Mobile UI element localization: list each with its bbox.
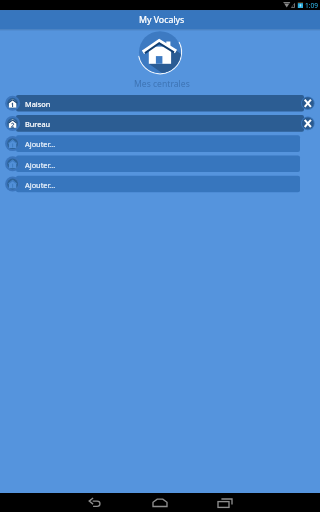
button[interactable]: Maison	[4, 95, 304, 112]
staticText: My Vocalys	[139, 14, 185, 26]
staticText: Ajouter...	[25, 180, 56, 190]
staticText: Ajouter...	[25, 160, 56, 170]
staticText: 1:09	[305, 1, 319, 10]
button[interactable]: Ajouter...	[4, 156, 300, 173]
button[interactable]: Mes centrales	[138, 30, 182, 74]
button[interactable]: Recent apps	[202, 493, 248, 512]
button[interactable]: Ajouter...	[4, 135, 300, 152]
staticText: Ajouter...	[25, 139, 56, 149]
staticText: Maison	[25, 99, 51, 109]
button[interactable]: Back	[75, 493, 121, 512]
button[interactable]: Home	[138, 493, 184, 512]
button[interactable]: Bureau	[4, 115, 304, 132]
button[interactable]: Ajouter...	[4, 176, 300, 193]
staticText: Bureau	[25, 119, 51, 129]
button[interactable]: Remove	[301, 116, 315, 130]
staticText: Mes centrales	[134, 78, 190, 90]
button[interactable]: Remove	[301, 96, 315, 110]
